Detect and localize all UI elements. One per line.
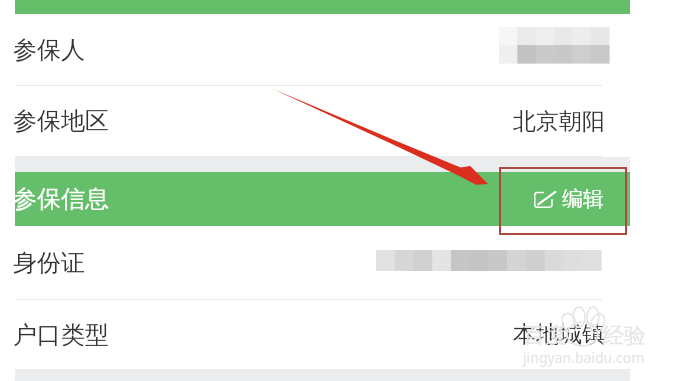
staticText: 编辑 (562, 186, 604, 212)
staticText: 参保信息 (13, 184, 109, 214)
button[interactable]: 户口类型 (15, 300, 630, 369)
button[interactable]: 参保人 (15, 14, 630, 85)
button[interactable]: 编辑 (522, 178, 630, 220)
button[interactable]: 身份证 (15, 226, 630, 299)
other: 编辑 (534, 191, 557, 208)
staticText: 经验 (602, 322, 646, 350)
staticText: 百度 (523, 322, 567, 350)
staticText: 身份证 (13, 248, 85, 278)
staticText: 参保地区 (13, 106, 109, 136)
staticText: jingyan.baidu.com (523, 348, 645, 367)
button[interactable]: 参保地区 (15, 86, 630, 156)
staticText: 北京朝阳 (513, 107, 605, 136)
staticText: 本地城镇 (513, 320, 605, 349)
staticText: 户口类型 (13, 320, 109, 350)
staticText: 参保人 (13, 35, 85, 65)
